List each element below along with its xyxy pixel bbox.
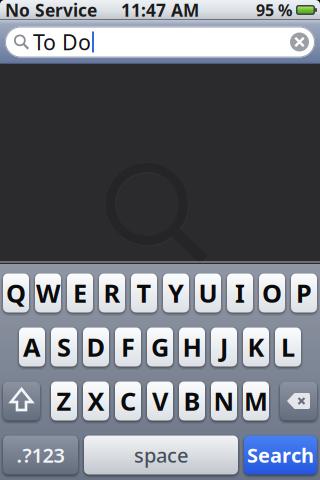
staticText: 11:47 AM: [121, 0, 199, 21]
button[interactable]: R: [99, 273, 125, 312]
staticText: Search: [247, 442, 314, 468]
staticText: Q: [6, 276, 26, 310]
staticText: Z: [56, 384, 71, 418]
staticText: R: [103, 276, 120, 310]
staticText: K: [247, 330, 264, 364]
staticText: A: [23, 330, 41, 364]
button[interactable]: F: [115, 327, 141, 366]
staticText: No Service: [5, 0, 97, 21]
button[interactable]: I: [227, 273, 253, 312]
staticText: D: [86, 330, 105, 364]
staticText: B: [183, 384, 200, 418]
button[interactable]: V: [147, 381, 173, 420]
button[interactable]: C: [115, 381, 141, 420]
staticText: S: [57, 330, 71, 364]
button[interactable]: L: [275, 327, 301, 366]
button[interactable]: G: [147, 327, 173, 366]
button[interactable]: K: [243, 327, 269, 366]
button[interactable]: Search: [244, 435, 317, 474]
staticText: P: [296, 276, 312, 310]
button[interactable]: T: [131, 273, 157, 312]
button[interactable]: U: [195, 273, 221, 312]
button[interactable]: P: [291, 273, 317, 312]
staticText: X: [87, 384, 104, 418]
staticText: V: [152, 384, 168, 418]
staticText: E: [73, 276, 87, 310]
button[interactable]: Shift: [3, 381, 40, 420]
staticText: 95 %: [256, 0, 292, 21]
staticText: H: [182, 330, 201, 364]
button[interactable]: E: [67, 273, 93, 312]
button[interactable]: D: [83, 327, 109, 366]
button[interactable]: X: [83, 381, 109, 420]
staticText: W: [36, 276, 60, 310]
staticText: F: [121, 330, 135, 364]
staticText: J: [220, 330, 228, 364]
button[interactable]: J: [211, 327, 237, 366]
staticText: N: [213, 384, 234, 418]
button[interactable]: .?123: [3, 435, 78, 474]
staticText: L: [281, 330, 295, 364]
button[interactable]: Q: [3, 273, 29, 312]
staticText: Y: [168, 276, 184, 310]
button[interactable]: S: [51, 327, 77, 366]
button[interactable]: Delete: [280, 381, 317, 420]
staticText: I: [235, 276, 245, 310]
button[interactable]: space: [84, 435, 238, 474]
staticText: C: [120, 384, 136, 418]
button[interactable]: Z: [51, 381, 77, 420]
button[interactable]: Search field: To Do: [5, 26, 315, 57]
button[interactable]: B: [179, 381, 205, 420]
button[interactable]: Y: [163, 273, 189, 312]
staticText: M: [244, 384, 268, 418]
staticText: O: [262, 276, 282, 310]
staticText: U: [198, 276, 217, 310]
button[interactable]: Clear text: [290, 32, 309, 51]
staticText: To Do: [33, 28, 91, 56]
button[interactable]: W: [35, 273, 61, 312]
button[interactable]: A: [19, 327, 45, 366]
button[interactable]: N: [211, 381, 237, 420]
button[interactable]: H: [179, 327, 205, 366]
staticText: T: [136, 276, 151, 310]
staticText: space: [134, 442, 188, 468]
staticText: G: [151, 330, 169, 364]
button[interactable]: O: [259, 273, 285, 312]
button[interactable]: M: [243, 381, 269, 420]
staticText: .?123: [16, 442, 64, 468]
